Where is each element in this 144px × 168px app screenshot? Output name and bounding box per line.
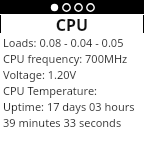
staticText: 39 minutes 33 seconds (3, 115, 122, 130)
button[interactable]: Page 3 (74, 3, 83, 12)
staticText: CPU frequency: 700MHz (3, 51, 128, 66)
staticText: CPU Temperature: 48.692°C (3, 83, 142, 98)
button[interactable]: Page 1 (50, 3, 59, 12)
staticText: Loads: 0.08 - 0.04 - 0.05 (3, 35, 124, 50)
button[interactable]: Page 2 (62, 3, 71, 12)
staticText: Voltage: 1.20V (3, 67, 77, 82)
button[interactable]: CPU (0, 14, 144, 34)
button[interactable]: Page 4 (86, 3, 95, 12)
staticText: Uptime: 17 days 03 hours (3, 99, 135, 114)
